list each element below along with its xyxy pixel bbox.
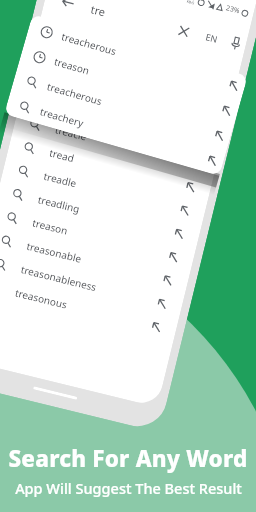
other: Use suggestion xyxy=(220,104,234,118)
staticText: 23% xyxy=(225,3,241,16)
button[interactable]: treason xyxy=(18,39,241,126)
other: Clear xyxy=(177,25,190,38)
button[interactable]: treacle xyxy=(13,108,219,180)
staticText: treasonableness xyxy=(19,262,99,294)
other: Use suggestion xyxy=(167,251,180,264)
staticText: treacherous xyxy=(65,76,124,103)
other: Back xyxy=(59,0,76,11)
staticText: treachery xyxy=(59,99,106,123)
other: Use suggestion xyxy=(206,154,219,168)
staticText: treadle xyxy=(42,169,79,191)
button[interactable]: treachery xyxy=(18,84,224,157)
other: Use suggestion xyxy=(156,297,169,311)
other: Use suggestion xyxy=(184,181,198,194)
button[interactable]: treacherous xyxy=(24,61,230,133)
staticText: treason xyxy=(53,54,91,78)
staticText: treacle xyxy=(54,122,88,143)
button[interactable]: treadling xyxy=(0,178,201,250)
staticText: treadling xyxy=(37,192,82,216)
button[interactable]: tread xyxy=(7,131,213,203)
other: Use suggestion xyxy=(190,157,203,171)
button[interactable]: treasonable xyxy=(0,224,190,296)
staticText: App Will Suggest The Best Result xyxy=(15,478,242,498)
staticText: treasonable xyxy=(25,239,83,266)
button[interactable]: treasonous xyxy=(0,271,179,343)
staticText: EN xyxy=(204,30,219,45)
other: Use suggestion xyxy=(173,227,186,241)
staticText: treachery xyxy=(38,104,85,130)
staticText: tre xyxy=(89,1,107,19)
staticText: treacherous xyxy=(45,79,104,108)
other: Voice search xyxy=(229,36,243,51)
other: Use suggestion xyxy=(227,79,241,93)
other: Use suggestion xyxy=(213,129,227,143)
other: Use suggestion xyxy=(150,321,163,334)
staticText: treasonous xyxy=(14,285,69,312)
button[interactable]: treadle xyxy=(1,154,207,227)
button[interactable]: treacherous xyxy=(11,64,234,151)
staticText: treason xyxy=(31,215,69,238)
staticText: treacherous xyxy=(60,29,118,58)
other: Use suggestion xyxy=(161,274,175,287)
button[interactable]: treachery xyxy=(4,89,226,176)
other: Use suggestion xyxy=(179,204,192,217)
staticText: Search For Any Word xyxy=(8,443,248,474)
button[interactable]: treacherous xyxy=(25,14,248,101)
button[interactable]: treason xyxy=(0,201,196,273)
staticText: tread xyxy=(48,146,76,165)
button[interactable]: treasonableness xyxy=(0,247,184,320)
staticText: 0.99 KB/S xyxy=(186,0,196,5)
